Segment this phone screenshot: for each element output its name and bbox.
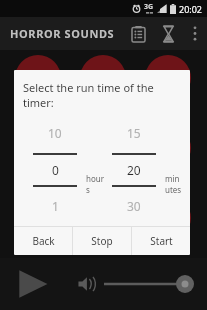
staticText: Select the run time of the timer:: [23, 80, 184, 110]
staticText: minutes: [165, 173, 184, 195]
button[interactable]: More options: [183, 17, 207, 50]
staticText: 20:02: [179, 3, 203, 15]
button[interactable]: Sound list: [123, 17, 153, 50]
staticText: HORROR SOUNDS: [10, 26, 115, 41]
staticText: 0: [52, 162, 59, 178]
button[interactable]: 10: [26, 125, 84, 214]
staticText: 3G: [144, 2, 154, 12]
staticText: Start: [150, 234, 173, 248]
button[interactable]: 15: [105, 125, 163, 214]
button[interactable]: Volume level: [104, 272, 199, 296]
staticText: hours: [86, 173, 105, 195]
staticText: 10: [48, 125, 62, 141]
button[interactable]: Timer: [153, 17, 183, 50]
button[interactable]: Volume: [77, 275, 95, 293]
staticText: 15: [127, 125, 141, 141]
staticText: 1: [52, 198, 59, 214]
button[interactable]: Play: [14, 265, 52, 303]
staticText: 20: [127, 162, 141, 178]
staticText: 30: [127, 198, 141, 214]
staticText: Back: [32, 234, 55, 248]
staticText: Stop: [91, 234, 113, 248]
button[interactable]: Stop: [73, 227, 131, 255]
button[interactable]: Back: [14, 227, 72, 255]
button[interactable]: Start: [132, 227, 190, 255]
